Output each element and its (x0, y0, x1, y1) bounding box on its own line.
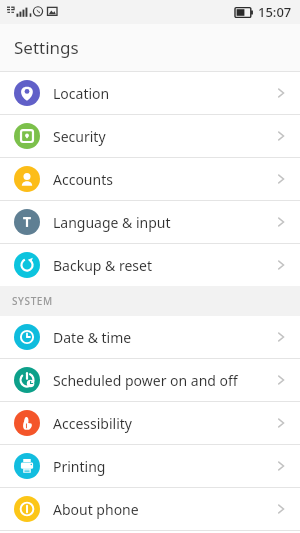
button[interactable]: Language & input (0, 201, 300, 243)
button[interactable]: About phone (0, 488, 300, 530)
button[interactable]: Accessibility (0, 402, 300, 444)
button[interactable]: Security (0, 115, 300, 157)
button[interactable]: Accounts (0, 158, 300, 200)
button[interactable]: Date & time (0, 316, 300, 358)
staticText: Backup & reset (53, 256, 274, 275)
staticText: Printing (53, 457, 274, 476)
staticText: About phone (53, 500, 274, 519)
button[interactable]: Scheduled power on and off (0, 359, 300, 401)
staticText: Location (53, 84, 274, 103)
button[interactable]: Printing (0, 445, 300, 487)
staticText: 15:07 (258, 3, 292, 21)
staticText: Date & time (53, 328, 274, 347)
staticText: Settings (14, 36, 79, 59)
staticText: Language & input (53, 213, 274, 232)
button[interactable]: Location (0, 72, 300, 114)
staticText: Scheduled power on and off (53, 371, 274, 390)
staticText: Security (53, 127, 274, 146)
staticText: Accessibility (53, 414, 274, 433)
button[interactable]: Backup & reset (0, 244, 300, 286)
staticText: SYSTEM (12, 294, 53, 308)
staticText: Accounts (53, 170, 274, 189)
